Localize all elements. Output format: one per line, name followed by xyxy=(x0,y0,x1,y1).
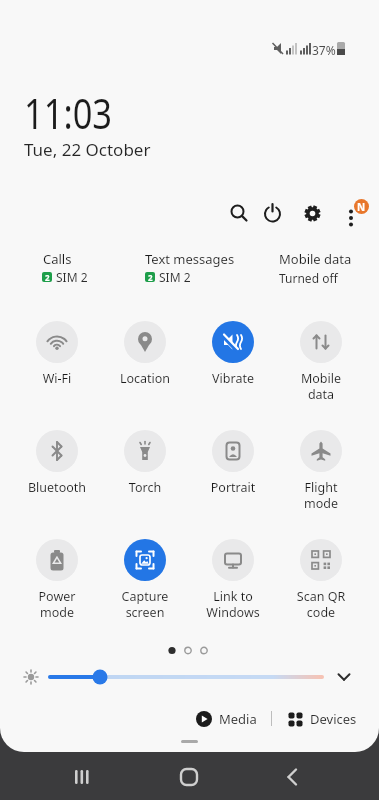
button[interactable] xyxy=(221,195,258,232)
staticText: Torch xyxy=(101,479,189,496)
staticText: Location xyxy=(101,370,189,387)
staticText: Portrait xyxy=(189,479,277,496)
staticText: Mobile data xyxy=(277,370,365,403)
button[interactable] xyxy=(36,539,78,581)
button[interactable] xyxy=(300,321,342,363)
staticText: Turned off xyxy=(279,270,338,286)
staticText: Link to Windows xyxy=(189,588,277,621)
staticText: Devices xyxy=(310,710,357,728)
button[interactable] xyxy=(36,430,78,472)
staticText: Vibrate xyxy=(189,370,277,387)
button[interactable] xyxy=(212,539,254,581)
staticText: Flight mode xyxy=(277,479,365,512)
staticText: Power mode xyxy=(13,588,101,621)
button[interactable] xyxy=(124,321,166,363)
button[interactable]: Media xyxy=(196,706,257,732)
staticText: Tue, 22 October xyxy=(24,138,151,161)
staticText: SIM 2 xyxy=(159,269,191,285)
staticText: Capture screen xyxy=(101,588,189,621)
button[interactable] xyxy=(36,321,78,363)
staticText: Mobile data xyxy=(279,250,352,268)
staticText: 11:03 xyxy=(24,84,113,141)
button[interactable] xyxy=(300,430,342,472)
staticText: Media xyxy=(219,710,257,728)
staticText: 2 xyxy=(45,272,50,282)
button[interactable] xyxy=(272,754,312,798)
staticText: N xyxy=(357,200,366,214)
button[interactable] xyxy=(124,539,166,581)
staticText: Text messages xyxy=(145,250,235,268)
button[interactable] xyxy=(62,754,102,798)
staticText: 2 xyxy=(148,272,153,282)
button[interactable] xyxy=(328,662,360,692)
button[interactable] xyxy=(169,754,209,798)
staticText: Wi-Fi xyxy=(13,370,101,387)
staticText: Calls xyxy=(43,250,72,268)
staticText: Bluetooth xyxy=(13,479,101,496)
staticText: 37% xyxy=(312,42,336,58)
staticText: Scan QR code xyxy=(277,588,365,621)
button[interactable]: N xyxy=(333,195,370,232)
button[interactable] xyxy=(212,430,254,472)
button[interactable]: Devices xyxy=(288,706,357,732)
button[interactable] xyxy=(212,321,254,363)
staticText: SIM 2 xyxy=(56,269,88,285)
button[interactable] xyxy=(300,539,342,581)
button[interactable] xyxy=(124,430,166,472)
button[interactable] xyxy=(254,195,291,232)
button[interactable] xyxy=(294,195,331,232)
